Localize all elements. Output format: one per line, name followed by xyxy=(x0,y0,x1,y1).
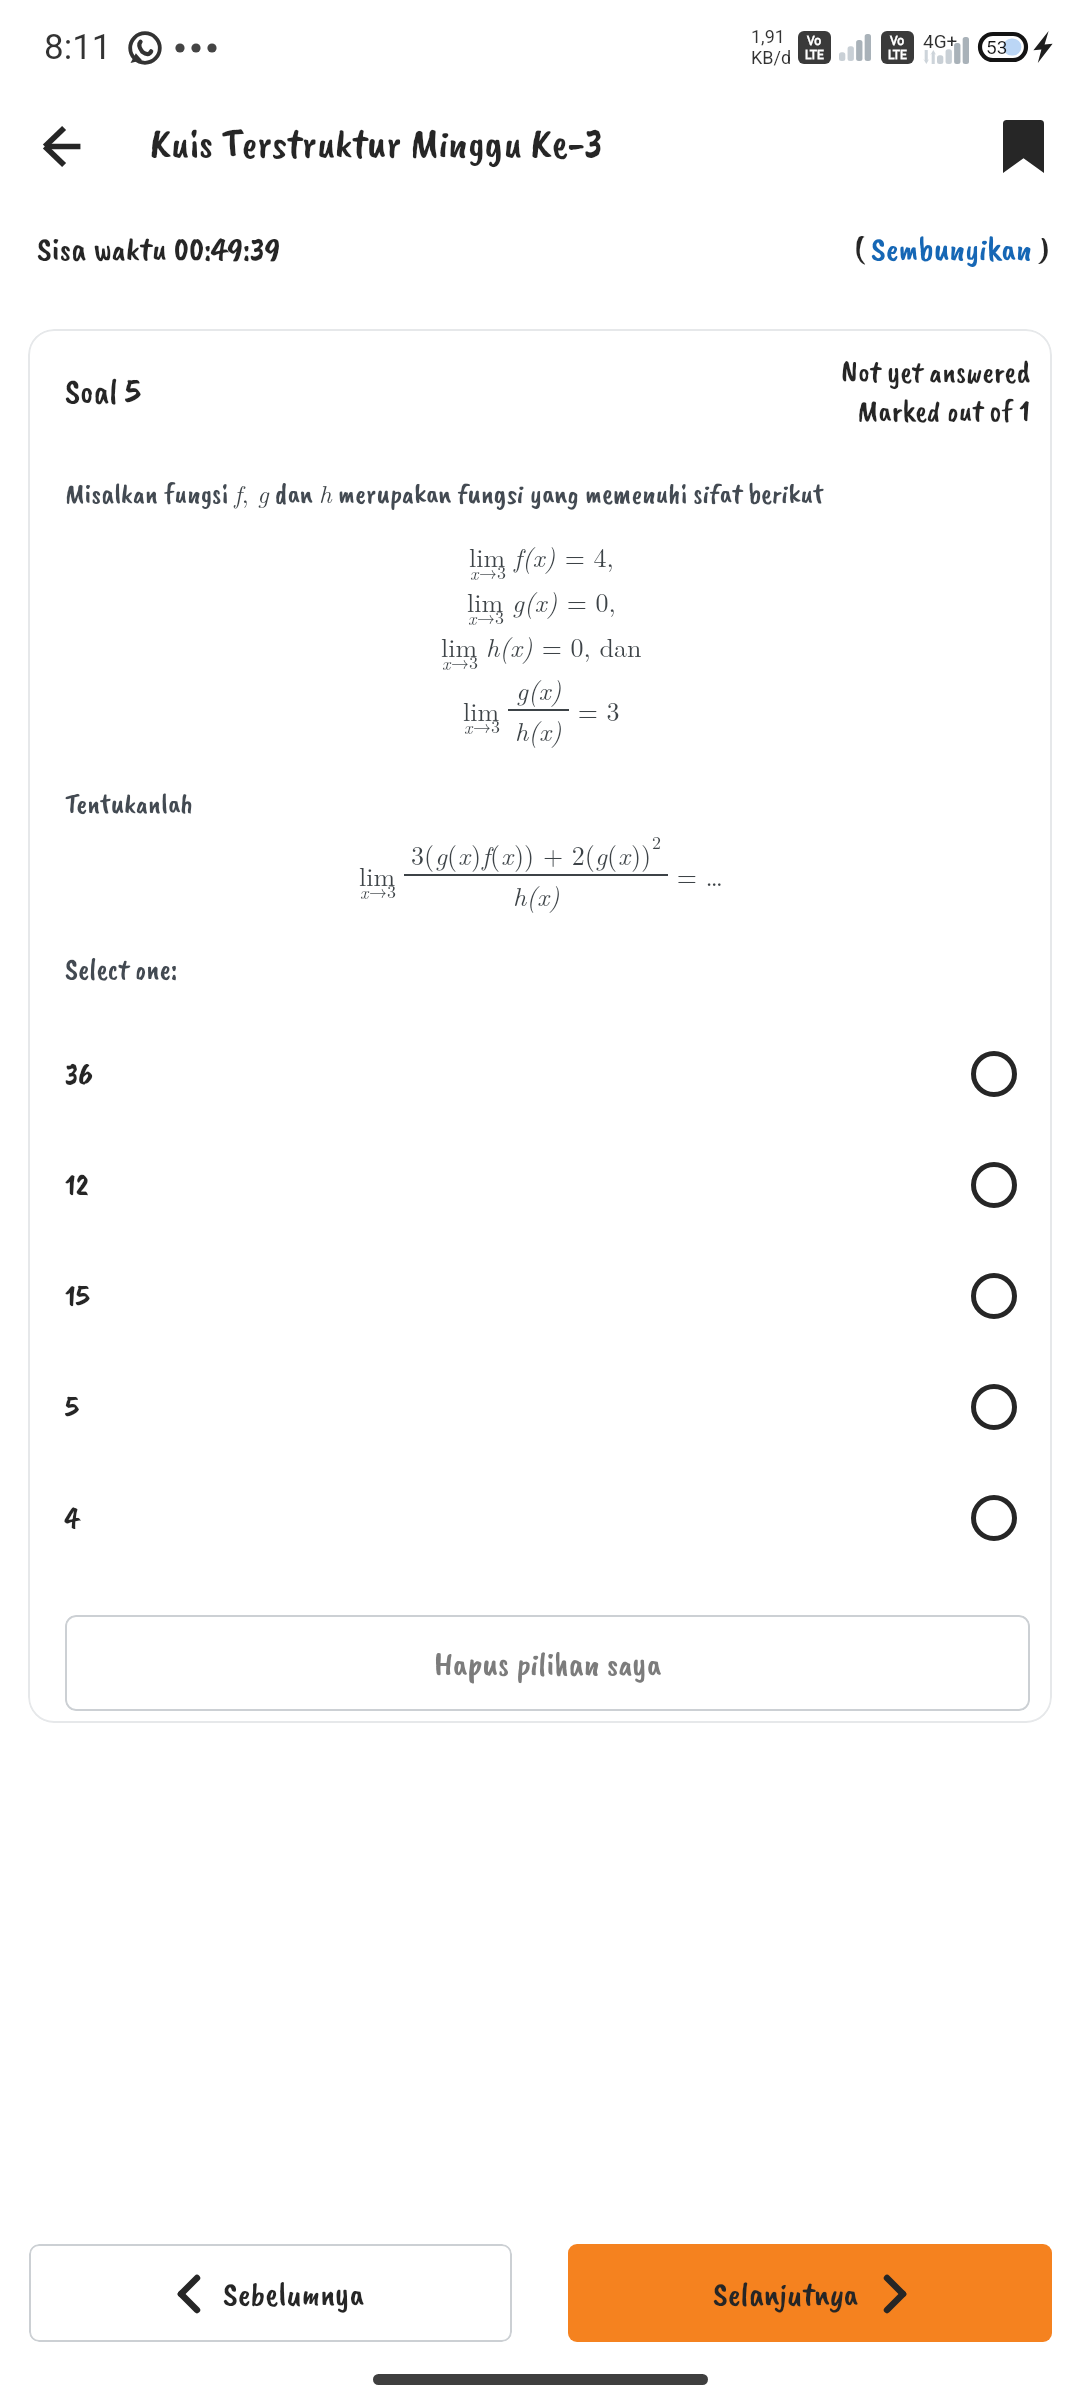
staticText: x xyxy=(360,879,369,904)
staticText: h(x) xyxy=(513,877,560,914)
staticText: 53 xyxy=(986,36,1008,58)
staticText: Vo xyxy=(807,34,822,48)
button[interactable]: ( xyxy=(848,221,1056,276)
staticText: ) xyxy=(471,836,482,873)
staticText: x xyxy=(464,714,473,739)
button[interactable]: Bookmark xyxy=(966,94,1080,198)
staticText: →3 xyxy=(473,713,500,739)
staticText: 4 xyxy=(65,1498,80,1537)
staticText: g xyxy=(435,836,447,873)
staticText: x xyxy=(442,650,451,675)
staticText: ( xyxy=(854,227,871,270)
button[interactable]: Selanjutnya xyxy=(568,2244,1052,2342)
staticText: 1,91 xyxy=(751,26,785,47)
staticText: Not yet answered xyxy=(841,352,1030,391)
staticText: h(x) xyxy=(515,712,562,749)
staticText: Tentukanlah xyxy=(65,785,194,822)
staticText: Soal 5 xyxy=(65,369,141,413)
staticText: Sebelumnya xyxy=(223,2272,365,2315)
staticText: →3 xyxy=(369,878,396,904)
button[interactable]: 15 xyxy=(65,1240,1030,1351)
staticText: lim xyxy=(463,692,500,729)
button[interactable]: 4 xyxy=(65,1462,1030,1573)
staticText: f xyxy=(482,836,490,873)
staticText: Kuis Terstruktur Minggu Ke-3 xyxy=(150,117,603,170)
staticText: = 0, xyxy=(558,583,616,620)
staticText: 8:11 xyxy=(44,27,112,68)
staticText: ) xyxy=(1032,227,1050,270)
button[interactable]: Back xyxy=(0,94,122,198)
staticText: ( xyxy=(490,836,501,873)
staticText: f(x) xyxy=(514,538,556,575)
staticText: = 0, dan xyxy=(533,628,642,665)
staticText: x xyxy=(618,836,631,873)
staticText: g xyxy=(595,836,607,873)
button[interactable]: Hapus pilihan saya xyxy=(65,1615,1030,1711)
staticText: Marked out of 1 xyxy=(857,391,1030,430)
staticText: x xyxy=(470,560,479,585)
staticText: )) + 2( xyxy=(514,836,595,873)
staticText: x xyxy=(501,836,514,873)
staticText: Vo xyxy=(890,34,905,48)
staticText: →3 xyxy=(477,604,504,630)
staticText: LTE xyxy=(805,48,824,62)
staticText: ( xyxy=(447,836,458,873)
staticText: 5 xyxy=(65,1387,79,1426)
staticText: 2 xyxy=(652,829,661,855)
staticText: Sisa waktu 00:49:39 xyxy=(37,227,281,270)
staticText: Sembunyikan xyxy=(871,227,1032,270)
staticText: 4G+ xyxy=(923,30,958,52)
staticText: = 3 xyxy=(569,692,620,729)
staticText: 3( xyxy=(411,836,435,873)
staticText: lim xyxy=(441,628,478,665)
button[interactable]: 36 xyxy=(65,1018,1030,1129)
staticText: →3 xyxy=(479,559,506,585)
staticText: lim xyxy=(469,538,506,575)
staticText: KB/d xyxy=(751,47,792,68)
staticText: Selanjutnya xyxy=(713,2272,859,2315)
staticText: 15 xyxy=(65,1276,90,1315)
staticText: ( xyxy=(607,836,618,873)
button[interactable]: 5 xyxy=(65,1351,1030,1462)
staticText: )) xyxy=(631,836,652,873)
button[interactable]: Sebelumnya xyxy=(29,2244,512,2342)
staticText: = … xyxy=(668,857,723,894)
staticText: g(x) xyxy=(516,671,562,708)
button[interactable]: 12 xyxy=(65,1129,1030,1240)
staticText: Select one: xyxy=(65,950,178,988)
staticText: = 4, xyxy=(556,538,614,575)
staticText: h(x) xyxy=(486,628,533,665)
staticText: Hapus pilihan saya xyxy=(434,1642,662,1685)
staticText: Misalkan fungsi f, g dan h merupakan fun… xyxy=(65,475,824,512)
staticText: lim xyxy=(359,857,396,894)
staticText: x xyxy=(468,605,477,630)
staticText: 36 xyxy=(65,1054,93,1093)
staticText: lim xyxy=(467,583,504,620)
staticText: →3 xyxy=(451,649,478,675)
staticText: g(x) xyxy=(512,583,558,620)
staticText: LTE xyxy=(888,48,907,62)
staticText: x xyxy=(458,836,471,873)
staticText: 12 xyxy=(65,1165,89,1204)
